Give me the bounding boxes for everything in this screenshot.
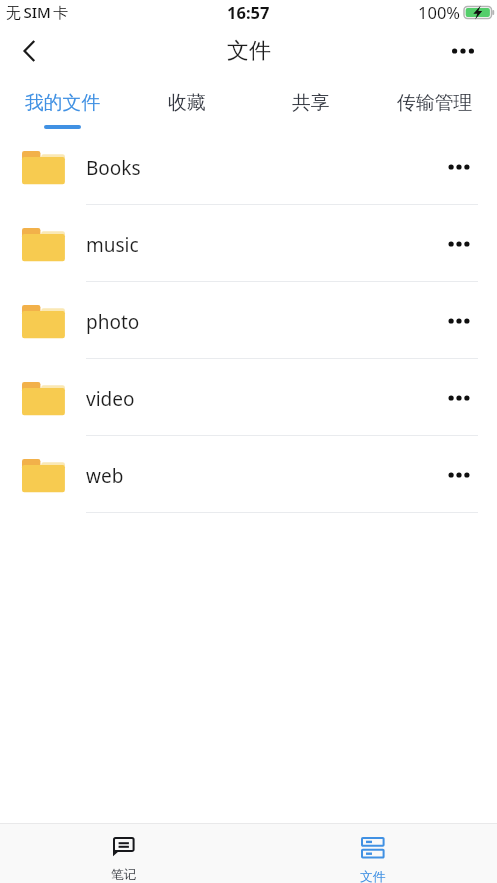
button[interactable]: Books xyxy=(0,128,497,205)
staticText: 16:57 xyxy=(227,1,270,23)
staticText: music xyxy=(86,232,139,258)
button[interactable]: 共享 xyxy=(249,74,373,128)
staticText: 传输管理 xyxy=(397,91,473,115)
button[interactable]: 文件 xyxy=(248,824,497,883)
button[interactable]: video xyxy=(0,359,497,436)
staticText: 无 SIM 卡 xyxy=(6,2,69,22)
button[interactable]: 我的文件 xyxy=(0,74,125,128)
button[interactable]: music xyxy=(0,205,497,282)
button[interactable]: More options for photo xyxy=(420,282,497,359)
button[interactable]: More options for web xyxy=(420,436,497,513)
staticText: 文件 xyxy=(360,869,386,883)
button[interactable]: Back xyxy=(0,28,57,74)
button[interactable]: 传输管理 xyxy=(373,74,497,128)
staticText: 共享 xyxy=(292,91,330,115)
button[interactable]: web xyxy=(0,436,497,513)
staticText: photo xyxy=(86,309,140,335)
button[interactable]: More options xyxy=(429,28,497,74)
staticText: 100% xyxy=(418,1,461,23)
staticText: 文件 xyxy=(227,37,271,65)
staticText: web xyxy=(86,463,124,489)
staticText: video xyxy=(86,386,135,412)
staticText: 我的文件 xyxy=(25,91,101,115)
staticText: 笔记 xyxy=(111,867,137,883)
button[interactable]: 笔记 xyxy=(0,824,248,883)
button[interactable]: More options for video xyxy=(420,359,497,436)
staticText: Books xyxy=(86,155,141,181)
staticText: 收藏 xyxy=(168,91,206,115)
button[interactable]: More options for music xyxy=(420,205,497,282)
button[interactable]: More options for Books xyxy=(420,128,497,205)
button[interactable]: 收藏 xyxy=(125,74,249,128)
button[interactable]: photo xyxy=(0,282,497,359)
